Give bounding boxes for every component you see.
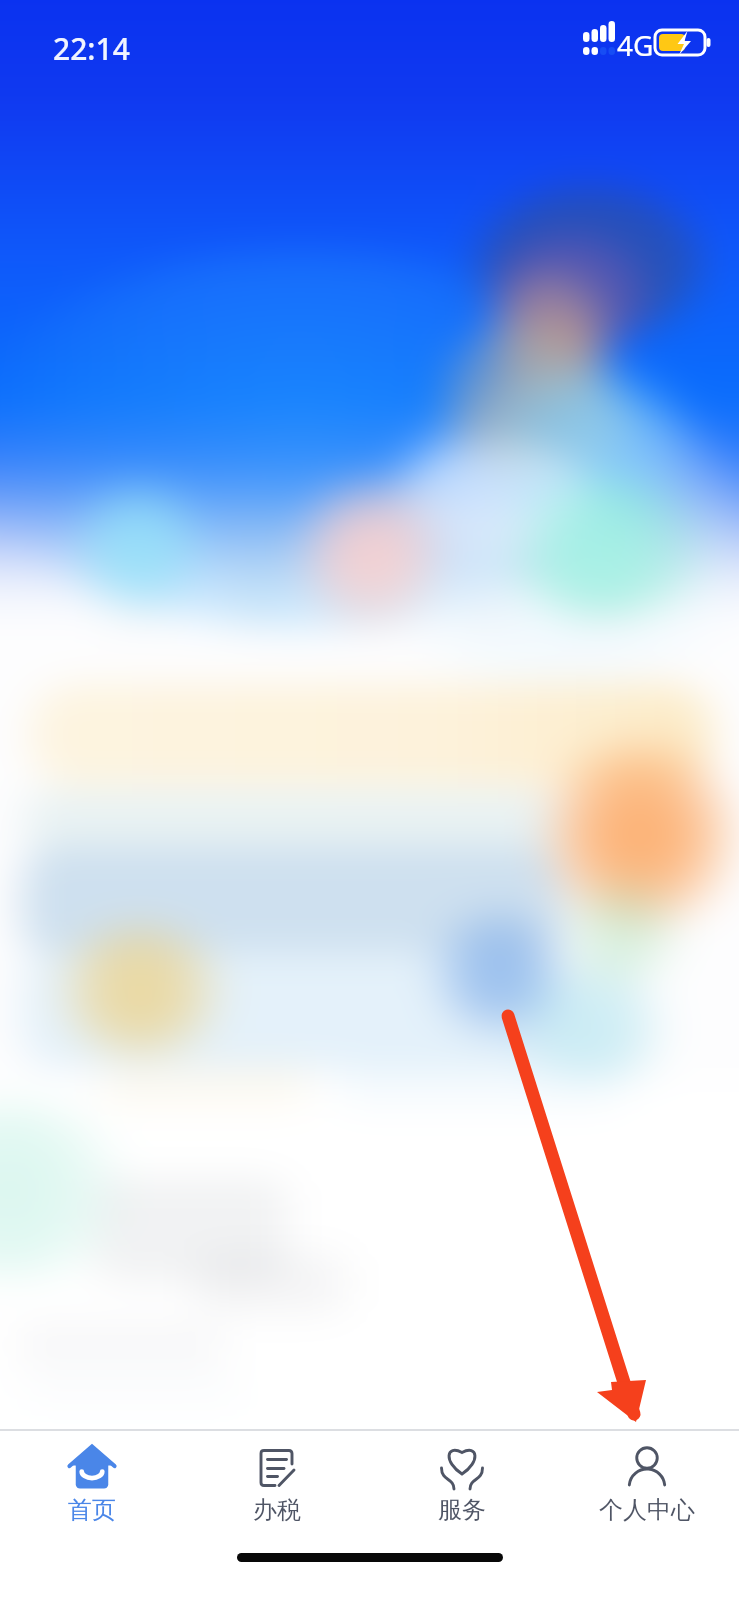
staticText: 服务 <box>438 1495 486 1525</box>
button[interactable]: 个人中心 <box>554 1431 739 1541</box>
staticText: 22:14 <box>53 28 130 69</box>
staticText: 首页 <box>68 1495 116 1525</box>
button[interactable]: 首页 <box>0 1431 184 1541</box>
button[interactable]: 服务 <box>369 1431 554 1541</box>
staticText: 个人中心 <box>599 1495 695 1525</box>
staticText: 4G <box>617 26 654 64</box>
staticText: 办税 <box>253 1495 301 1525</box>
staticText: Baidu 经验 <box>566 1516 739 1562</box>
button[interactable]: 办税 <box>184 1431 369 1541</box>
